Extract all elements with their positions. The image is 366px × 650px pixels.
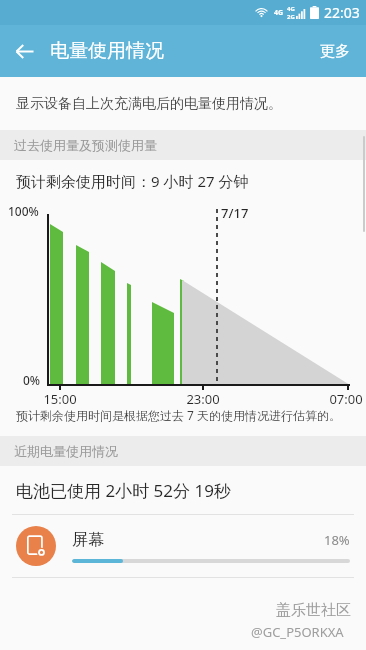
staticText: 18% (324, 531, 350, 549)
staticText: 近期电量使用情况 (14, 443, 118, 459)
staticText: 23:00 (179, 390, 227, 408)
staticText: 更多 (320, 42, 350, 61)
staticText: 电量使用情况 (50, 39, 164, 63)
staticText: 15:00 (36, 390, 84, 408)
staticText: 4G (274, 8, 284, 18)
staticText: 0% (23, 372, 41, 388)
staticText: 4G (287, 5, 295, 13)
staticText: 电池已使用 2小时 52分 19秒 (16, 479, 231, 502)
staticText: 盖乐世社区 (276, 601, 351, 620)
staticText: 2G (287, 13, 295, 21)
staticText: 过去使用量及预测使用量 (14, 137, 157, 153)
button[interactable]: 屏幕 (0, 515, 366, 577)
staticText: 100% (8, 203, 39, 219)
staticText: 07:00 (322, 390, 366, 408)
staticText: 屏幕 (72, 530, 104, 550)
button[interactable]: Back (0, 27, 48, 75)
staticText: 预计剩余使用时间是根据您过去 7 天的使用情况进行估算的。 (16, 407, 342, 423)
staticText: 22:03 (324, 3, 360, 22)
staticText: @GC_P5ORKXA (251, 623, 344, 641)
staticText: 预计剩余使用时间：9 小时 27 分钟 (16, 171, 249, 191)
staticText: 显示设备自上次充满电后的电量使用情况。 (16, 95, 282, 113)
button[interactable]: 更多 (304, 28, 366, 75)
staticText: 7/17 (221, 204, 249, 222)
